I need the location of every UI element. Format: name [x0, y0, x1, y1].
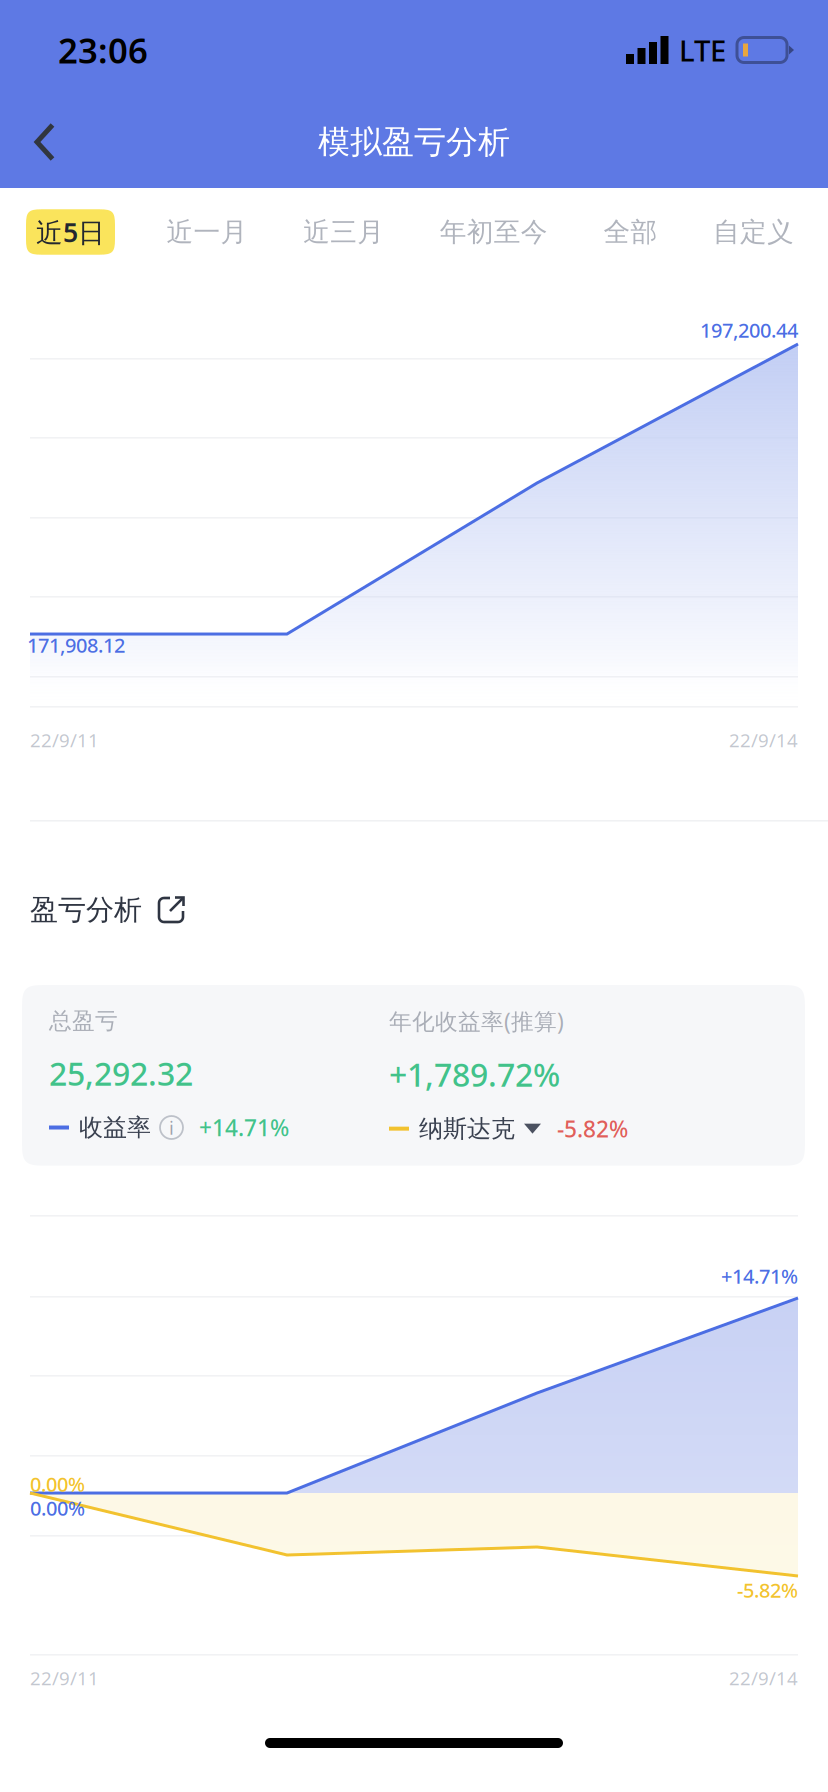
staticText: LTE	[679, 30, 726, 69]
button[interactable]: 近一月	[163, 211, 252, 253]
staticText: +1,789.72%	[389, 1053, 560, 1096]
staticText: 171,908.12	[27, 632, 125, 658]
staticText: 收益率	[79, 1113, 151, 1142]
staticText: 23:06	[58, 27, 148, 73]
button[interactable]: 自定义	[709, 211, 798, 253]
staticText: 0.00%	[30, 1471, 85, 1497]
staticText: -5.82%	[737, 1577, 798, 1603]
staticText: 22/9/14	[729, 728, 798, 752]
button[interactable]: Edit	[156, 895, 186, 925]
staticText: -5.82%	[557, 1114, 628, 1144]
staticText: 年初至今	[440, 216, 548, 248]
staticText: 近一月	[167, 216, 248, 248]
button[interactable]: 年初至今	[436, 211, 552, 253]
staticText: 22/9/11	[30, 728, 99, 752]
staticText: 25,292.32	[49, 1052, 193, 1094]
staticText: 总盈亏	[49, 1007, 118, 1035]
staticText: i	[169, 1115, 174, 1140]
staticText: 0.00%	[30, 1495, 85, 1521]
staticText: 22/9/14	[729, 1666, 798, 1690]
staticText: 年化收益率(推算)	[389, 1006, 564, 1036]
staticText: 近5日	[36, 214, 105, 250]
staticText: 22/9/11	[30, 1666, 99, 1690]
staticText: 197,200.44	[700, 317, 798, 343]
staticText: 全部	[603, 216, 657, 248]
staticText: 近三月	[303, 216, 384, 248]
button[interactable]: 近三月	[299, 211, 388, 253]
button[interactable]: 全部	[599, 211, 661, 253]
staticText: 模拟盈亏分析	[318, 122, 510, 162]
button[interactable]: 近5日	[26, 209, 115, 255]
staticText: +14.71%	[199, 1112, 289, 1143]
staticText: 纳斯达克	[419, 1114, 515, 1143]
staticText: +14.71%	[721, 1263, 798, 1289]
staticText: 自定义	[713, 216, 794, 248]
staticText: 盈亏分析	[30, 893, 142, 927]
button[interactable]: Back	[8, 105, 82, 179]
